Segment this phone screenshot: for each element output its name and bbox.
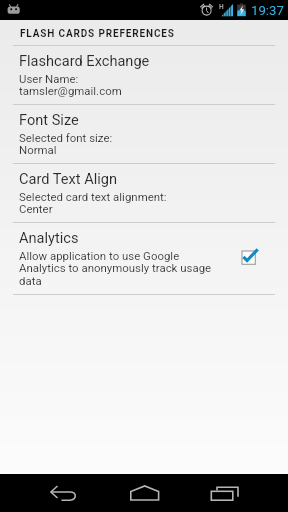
staticText: Flashcard Exchange (19, 52, 150, 69)
staticText: FLASH CARDS PREFERENCES (20, 28, 175, 40)
staticText: Card Text Align (19, 170, 118, 187)
button[interactable]: Home (116, 474, 172, 512)
button[interactable]: Font Size (0, 105, 288, 163)
staticText: User Name: tamsler@gmail.com (19, 72, 122, 98)
button[interactable]: Card Text Align (0, 164, 288, 222)
staticText: Selected card text alignment: Center (19, 190, 167, 216)
staticText: Selected font size: Normal (19, 131, 113, 157)
staticText: 19:37 (251, 3, 284, 18)
staticText: H (219, 3, 224, 11)
button[interactable]: Recent apps (196, 474, 252, 512)
staticText: Allow application to use Google Analytic… (19, 249, 212, 288)
button[interactable]: Analytics (0, 223, 288, 294)
staticText: Font Size (19, 111, 79, 128)
button[interactable]: Flashcard Exchange (0, 46, 288, 104)
button[interactable]: Back (36, 474, 92, 512)
staticText: Analytics (19, 229, 79, 246)
